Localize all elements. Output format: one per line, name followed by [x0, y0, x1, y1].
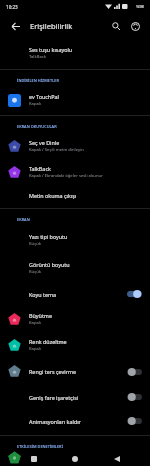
- button[interactable]: Büyütme: [0, 306, 150, 332]
- staticText: Büyütme: [29, 312, 52, 319]
- button[interactable]: Yazı tipi boyutu: [0, 226, 150, 254]
- staticText: Koyu tema: [29, 291, 127, 298]
- staticText: Geniş fare işaretçisi: [29, 394, 127, 401]
- staticText: ev TouchPal: [29, 93, 59, 100]
- staticText: TalkBack: [29, 165, 51, 172]
- button[interactable]: Renk düzeltme: [0, 332, 150, 358]
- staticText: Animasyonları kaldır: [29, 418, 127, 425]
- staticText: Rengi ters çevirme: [29, 368, 127, 375]
- button[interactable]: Help: [127, 18, 143, 34]
- button[interactable]: Seç ve Dinle: [0, 133, 150, 159]
- staticText: Yazı tipi boyutu: [29, 233, 68, 240]
- button[interactable]: Geniş fare işaretçisi: [0, 385, 150, 409]
- button[interactable]: Home: [67, 452, 83, 466]
- staticText: ETKİLEŞİM DENETİMLERİ: [17, 444, 63, 448]
- staticText: Metin okuma çıkışı: [29, 192, 77, 199]
- staticText: Erişilebilirlik: [30, 21, 73, 31]
- staticText: Kapalı / Ekrandaki öğeler sesli okunur: [29, 173, 103, 179]
- button[interactable]: ev TouchPal: [0, 87, 150, 113]
- button[interactable]: Animasyonları kaldır: [0, 409, 150, 433]
- staticText: EKRAN OKUYUCULAR: [17, 124, 57, 129]
- staticText: Kapalı: [29, 346, 42, 352]
- staticText: EKRAN: [17, 217, 30, 222]
- button[interactable]: Recents: [26, 452, 42, 466]
- staticText: Seç ve Dinle: [29, 139, 60, 146]
- button[interactable]: Back: [109, 452, 125, 466]
- staticText: Görüntü boyutu: [29, 261, 70, 268]
- staticText: Ses tuşu kısayolu: [29, 46, 73, 53]
- button[interactable]: Görüntü boyutu: [0, 254, 150, 282]
- staticText: TalkBack: [29, 54, 46, 60]
- button[interactable]: Metin okuma çıkışı: [0, 185, 150, 206]
- staticText: Kapalı: [29, 101, 42, 107]
- button[interactable]: Back: [7, 18, 23, 34]
- staticText: Küçük: [29, 269, 42, 275]
- staticText: 10:23: [6, 4, 18, 10]
- staticText: Renk düzeltme: [29, 338, 67, 345]
- button[interactable]: TalkBack: [0, 159, 150, 185]
- staticText: %98: [136, 4, 144, 9]
- button[interactable]: Koyu tema: [0, 282, 150, 306]
- staticText: İNDİRİLEN HİZMETLER: [17, 78, 59, 83]
- staticText: Kapalı / Seçili metin dinleyin: [29, 147, 84, 153]
- staticText: Kapalı: [29, 320, 42, 326]
- button[interactable]: Rengi ters çevirme: [0, 358, 150, 385]
- button[interactable]: Search: [108, 18, 124, 34]
- staticText: Küçük: [29, 241, 42, 247]
- button[interactable]: Ses tuşu kısayolu: [0, 39, 150, 67]
